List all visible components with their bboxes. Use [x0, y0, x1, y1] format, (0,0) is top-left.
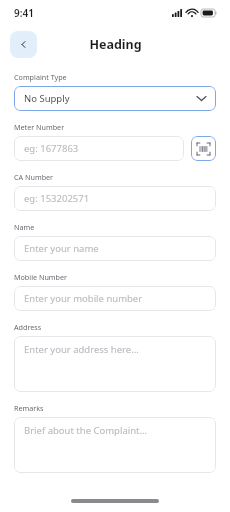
staticText: Complaint Type	[14, 72, 67, 82]
staticText: Heading	[89, 36, 142, 53]
staticText: Enter your address here...	[24, 343, 139, 356]
button[interactable]: Enter your mobile number	[14, 286, 216, 311]
staticText: 9:41	[14, 6, 34, 20]
button[interactable]: Enter your name	[14, 236, 216, 261]
staticText: Mobile Number	[14, 272, 67, 282]
staticText: Meter Number	[14, 122, 65, 132]
button[interactable]: Brief about the Complaint...	[14, 417, 216, 473]
staticText: Name	[14, 222, 35, 232]
staticText: Address	[14, 322, 42, 332]
button[interactable]: eg: 1677863	[14, 136, 184, 161]
staticText: eg: 153202571	[24, 192, 90, 205]
staticText: Remarks	[14, 403, 44, 413]
button[interactable]: Enter your address here...	[14, 336, 216, 392]
staticText: Enter your name	[24, 242, 99, 255]
button[interactable]: Back	[10, 31, 37, 58]
staticText: Enter your mobile number	[24, 292, 143, 305]
staticText: Brief about the Complaint...	[24, 424, 148, 437]
staticText: CA Number	[14, 172, 54, 182]
staticText: No Supply	[24, 92, 197, 105]
button[interactable]: Scan barcode	[191, 136, 216, 161]
button[interactable]: eg: 153202571	[14, 186, 216, 211]
staticText: eg: 1677863	[24, 142, 79, 155]
button[interactable]: No Supply	[14, 86, 216, 111]
